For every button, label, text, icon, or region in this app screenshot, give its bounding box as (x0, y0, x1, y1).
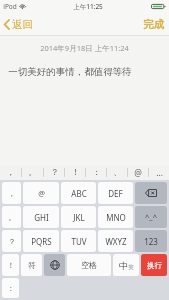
button[interactable]: ABC (61, 182, 96, 204)
button[interactable]: ： (86, 165, 106, 180)
staticText: 英 (128, 264, 134, 271)
staticText: MNO (106, 212, 126, 223)
button[interactable]: … (149, 165, 169, 180)
staticText: 完成 (143, 18, 164, 31)
staticText: 。 (8, 213, 16, 222)
button[interactable]: 符 (21, 254, 42, 276)
staticText: 。 (28, 167, 37, 178)
staticText: TUV (71, 236, 87, 247)
staticText: ？ (50, 167, 59, 178)
staticText: ？ (8, 237, 16, 246)
staticText: 中 (119, 260, 128, 271)
staticText: 换行 (147, 261, 162, 270)
staticText: @ (38, 188, 45, 198)
staticText: ！ (7, 261, 15, 270)
button[interactable]: ： (2, 278, 19, 298)
button[interactable]: ！ (65, 165, 85, 180)
button[interactable]: ？ (44, 165, 64, 180)
staticText: ： (92, 167, 101, 178)
staticText: ， (8, 189, 16, 198)
staticText: 符 (28, 261, 36, 270)
staticText: DEF (108, 188, 123, 199)
staticText: … (156, 167, 163, 179)
staticText: ^_^ (145, 212, 157, 222)
button[interactable]: 123 (135, 230, 167, 252)
button[interactable]: 。 (22, 165, 43, 180)
staticText: 2014年9月18日 上午11:24 (40, 43, 129, 53)
staticText: 上午11:25 (73, 2, 103, 11)
button[interactable]: 完成 (138, 14, 169, 35)
button[interactable]: WXYZ (98, 230, 133, 252)
staticText: WXYZ (105, 236, 127, 247)
button[interactable]: Switch keyboard (44, 254, 65, 276)
button[interactable]: 空格 (67, 254, 111, 276)
button[interactable]: @ (128, 165, 148, 180)
button[interactable]: 。 (2, 206, 21, 228)
button[interactable]: ， (2, 182, 21, 204)
staticText: ABC (71, 188, 87, 199)
staticText: GHI (34, 212, 49, 223)
button[interactable]: 换行 (141, 254, 167, 276)
staticText: JKL (73, 212, 85, 223)
staticText: 空格 (81, 260, 97, 270)
staticText: iPod (3, 2, 17, 11)
button[interactable]: GHI (23, 206, 59, 228)
button[interactable]: DEF (98, 182, 133, 204)
staticText: 返回 (12, 18, 33, 31)
button[interactable]: PQRS (23, 230, 59, 252)
staticText: ！ (71, 167, 80, 178)
button[interactable]: TUV (61, 230, 96, 252)
staticText: 、 (113, 167, 122, 178)
button[interactable]: 中 (113, 254, 139, 276)
button[interactable]: MNO (98, 206, 133, 228)
button[interactable]: ^_^ (135, 206, 167, 228)
button[interactable]: 、 (107, 165, 127, 180)
button[interactable]: ？ (2, 230, 21, 252)
button[interactable]: ！ (2, 254, 19, 276)
button[interactable]: 2014年9月18日 上午11:24 (0, 36, 169, 165)
staticText: @ (134, 167, 142, 179)
button[interactable]: 返回 (0, 14, 40, 35)
button[interactable]: JKL (61, 206, 96, 228)
staticText: ： (7, 284, 15, 293)
staticText: 123 (144, 236, 158, 247)
staticText: PQRS (31, 236, 52, 247)
staticText: 一切美好的事情，都值得等待 (8, 66, 132, 78)
button[interactable]: @ (23, 182, 59, 204)
button[interactable]: Delete (135, 182, 167, 204)
button[interactable]: ， (0, 165, 21, 180)
staticText: ， (6, 167, 15, 178)
